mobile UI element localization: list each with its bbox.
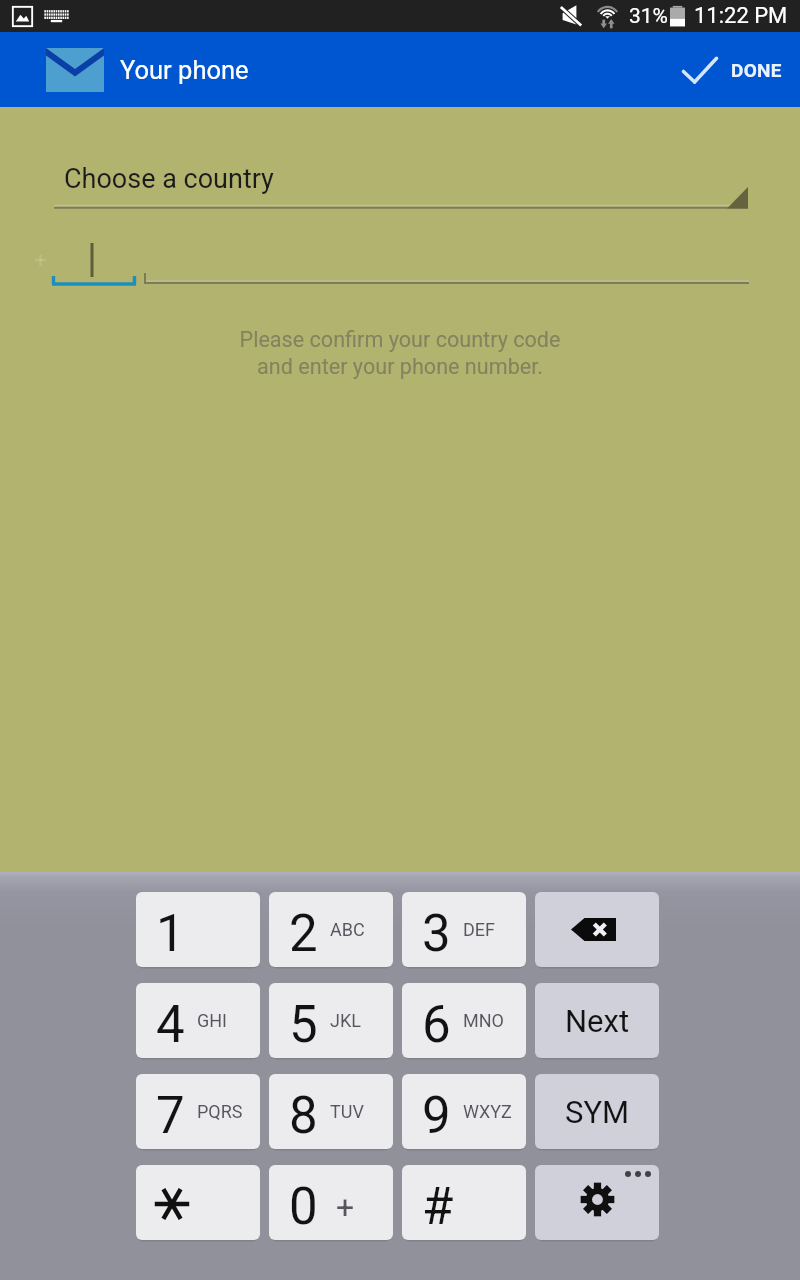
staticText: Your phone	[120, 55, 249, 85]
button[interactable]: Choose a country	[54, 163, 748, 209]
staticText: GHI	[197, 1010, 227, 1031]
staticText: WXYZ	[463, 1101, 512, 1122]
staticText: #	[422, 1177, 454, 1237]
staticText: 4	[156, 995, 185, 1055]
button[interactable]: 8	[269, 1074, 393, 1149]
button[interactable]: 4	[136, 983, 260, 1058]
staticText: DONE	[731, 59, 782, 81]
button[interactable]: 2	[269, 892, 393, 967]
staticText: PQRS	[197, 1101, 243, 1122]
staticText: JKL	[330, 1010, 361, 1031]
staticText: 1	[156, 904, 185, 964]
staticText: +	[336, 1188, 355, 1226]
staticText: 3	[422, 904, 451, 964]
button[interactable]: 9	[402, 1074, 526, 1149]
staticText: MNO	[463, 1010, 504, 1031]
staticText: Please confirm your country code and ent…	[0, 327, 800, 380]
button[interactable]: Delete	[535, 892, 659, 967]
staticText: ABC	[330, 919, 365, 940]
other: Delete	[571, 918, 616, 941]
button[interactable]: #	[402, 1165, 526, 1240]
button[interactable]: Next	[535, 983, 659, 1058]
button[interactable]: 0	[269, 1165, 393, 1240]
button[interactable]: SYM	[535, 1074, 659, 1149]
button[interactable]: 1	[136, 892, 260, 967]
staticText: 2	[289, 904, 318, 964]
button[interactable]: 6	[402, 983, 526, 1058]
staticText: 0	[289, 1177, 318, 1237]
staticText: 6	[422, 995, 451, 1055]
staticText: 31%	[629, 4, 668, 29]
other: Settings	[535, 1165, 659, 1240]
staticText: 9	[422, 1086, 451, 1146]
staticText: 7	[156, 1086, 185, 1146]
staticText: TUV	[330, 1101, 364, 1122]
button[interactable]: DONE	[660, 32, 800, 107]
staticText: Choose a country	[64, 163, 274, 195]
staticText: DEF	[463, 919, 495, 940]
staticText: 11:22 PM	[694, 3, 788, 29]
staticText: 8	[289, 1086, 318, 1146]
button[interactable]: 5	[269, 983, 393, 1058]
staticText: SYM	[565, 1094, 630, 1130]
button[interactable]: 7	[136, 1074, 260, 1149]
staticText: Next	[565, 1003, 630, 1039]
staticText: 5	[289, 995, 318, 1055]
button[interactable]	[136, 1165, 260, 1240]
button[interactable]: 3	[402, 892, 526, 967]
button[interactable]: Settings	[535, 1165, 659, 1240]
